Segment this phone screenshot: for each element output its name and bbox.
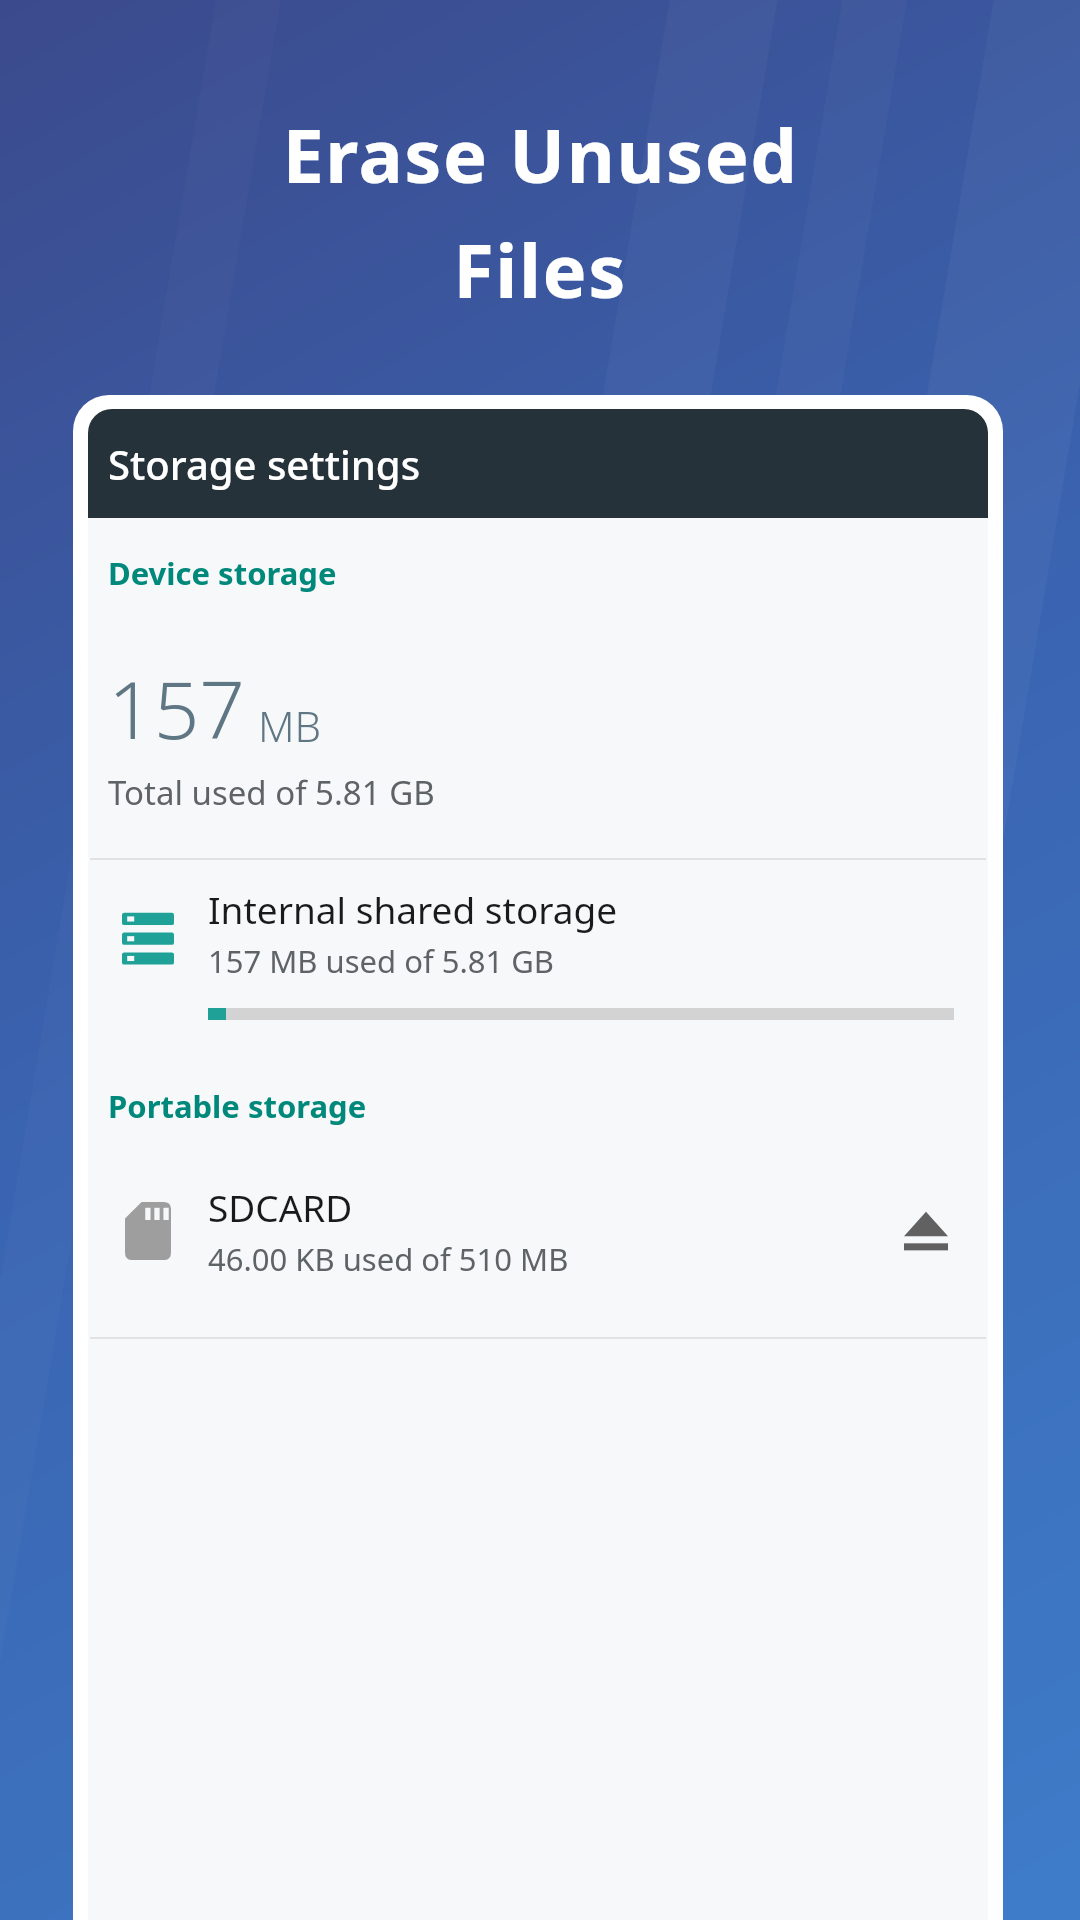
staticText: Total used of 5.81 GB	[108, 770, 435, 815]
staticText: Device storage	[108, 552, 337, 594]
button[interactable]: Eject SD card	[874, 1179, 978, 1283]
staticText: Erase Unused	[282, 104, 799, 205]
staticText: 157 MB used of 5.81 GB	[208, 940, 554, 982]
staticText: Files	[453, 219, 627, 320]
button[interactable]: Internal shared storage	[88, 860, 988, 1030]
staticText: Storage settings	[108, 437, 421, 491]
button[interactable]: SDCARD	[88, 1171, 988, 1291]
staticText: Internal shared storage	[208, 884, 618, 934]
staticText: Portable storage	[108, 1085, 367, 1127]
staticText: MB	[258, 697, 322, 754]
staticText: 46.00 KB used of 510 MB	[208, 1238, 569, 1280]
staticText: SDCARD	[208, 1182, 353, 1232]
staticText: 157	[108, 653, 246, 762]
